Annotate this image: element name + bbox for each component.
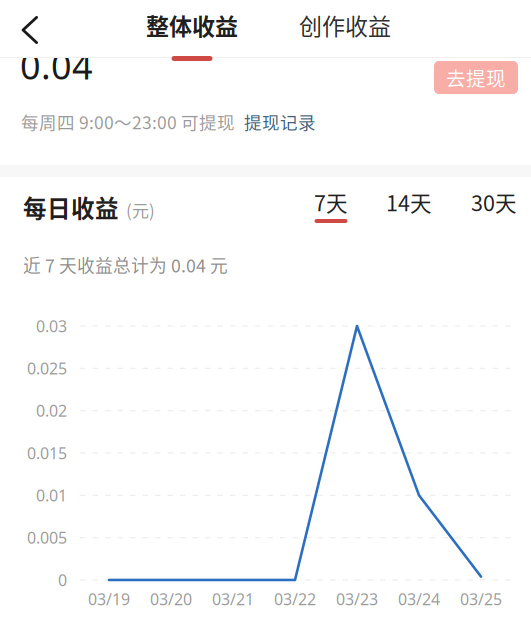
staticText: 03/22 <box>274 588 316 610</box>
staticText: 03/25 <box>460 588 502 610</box>
button[interactable]: 提现记录 <box>244 109 316 134</box>
staticText: 03/24 <box>398 588 440 610</box>
button[interactable]: 7天 <box>314 190 348 223</box>
staticText: 0.01 <box>36 484 67 506</box>
staticText: 30天 <box>471 186 517 217</box>
staticText: 近 7 天收益总计为 0.04 元 <box>23 252 228 278</box>
button[interactable]: 创作收益 <box>295 10 395 61</box>
button[interactable]: 30天 <box>471 190 517 223</box>
staticText: 0 <box>58 569 67 591</box>
button[interactable]: 去提现 <box>434 61 518 94</box>
staticText: 去提现 <box>446 63 506 92</box>
staticText: 创作收益 <box>299 8 391 42</box>
staticText: 整体收益 <box>146 8 238 42</box>
staticText: 0.005 <box>27 527 67 549</box>
button[interactable]: 14天 <box>386 190 432 223</box>
staticText: 03/21 <box>212 588 254 610</box>
staticText: 0.02 <box>36 400 67 422</box>
staticText: 每周四 9:00～23:00 可提现 <box>21 109 235 134</box>
staticText: 14天 <box>386 186 432 217</box>
staticText: 7天 <box>314 186 348 217</box>
staticText: 03/19 <box>88 588 130 610</box>
staticText: 0.03 <box>36 315 67 337</box>
staticText: 0.025 <box>27 357 67 379</box>
staticText: (元) <box>126 197 155 222</box>
button[interactable]: 整体收益 <box>142 10 242 61</box>
staticText: 0.015 <box>27 442 67 464</box>
staticText: 03/20 <box>150 588 192 610</box>
staticText: 提现记录 <box>244 109 316 134</box>
button[interactable]: Back <box>8 5 38 55</box>
staticText: 0.04 <box>20 41 93 90</box>
staticText: 每日收益 <box>23 190 119 224</box>
staticText: 03/23 <box>336 588 378 610</box>
